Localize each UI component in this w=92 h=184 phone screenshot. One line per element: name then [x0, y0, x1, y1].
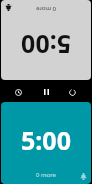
button[interactable]: Pause: [32, 80, 60, 102]
button[interactable]: Reset: [60, 80, 88, 102]
button[interactable]: 5:00: [1, 0, 91, 80]
staticText: 5:00: [21, 28, 71, 62]
staticText: 5:00: [21, 123, 71, 157]
button[interactable]: Add one minute: [4, 80, 32, 102]
staticText: 0 more: [36, 5, 56, 13]
staticText: 0 more: [36, 171, 56, 179]
button[interactable]: 5:00: [1, 102, 91, 184]
